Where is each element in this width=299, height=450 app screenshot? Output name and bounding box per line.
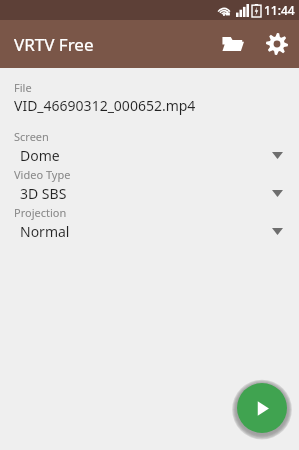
button[interactable]: Play (237, 383, 287, 433)
staticText: Dome (20, 146, 60, 165)
staticText: Video Type (14, 167, 71, 182)
button[interactable]: 3D SBS (14, 182, 289, 205)
staticText: Projection (14, 205, 67, 220)
button[interactable]: Settings (255, 22, 299, 66)
staticText: VRTV Free (14, 33, 94, 56)
staticText: 3D SBS (20, 184, 67, 203)
staticText: Normal (20, 222, 70, 241)
button[interactable]: Dome (14, 144, 289, 167)
staticText: File (14, 80, 32, 95)
staticText: 11:44 (264, 2, 295, 18)
button[interactable]: Normal (14, 220, 289, 243)
staticText: VID_46690312_000652.mp4 (14, 96, 196, 115)
staticText: Screen (14, 129, 49, 144)
button[interactable]: Open file (211, 22, 255, 66)
